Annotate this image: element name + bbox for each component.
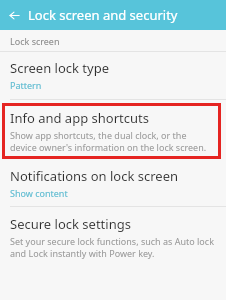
button[interactable]: Info and app shortcuts	[2, 103, 221, 159]
button[interactable]: Secure lock settings	[0, 207, 226, 268]
button[interactable]: Notifications on lock screen	[0, 163, 226, 206]
staticText: Show app shortcuts, the dual clock, or t…	[10, 129, 213, 153]
button[interactable]: Navigate up	[0, 0, 28, 30]
staticText: Pattern	[10, 79, 42, 91]
staticText: Info and app shortcuts	[10, 109, 149, 127]
staticText: Notifications on lock screen	[10, 167, 179, 185]
staticText: Set your secure lock functions, such as …	[10, 235, 214, 259]
staticText: Show content	[10, 187, 68, 199]
button[interactable]: Screen lock type	[0, 52, 226, 99]
staticText: Secure lock settings	[10, 215, 131, 233]
staticText: Lock screen and security	[28, 6, 178, 24]
staticText: Screen lock type	[10, 59, 109, 77]
staticText: Lock screen	[10, 35, 60, 47]
